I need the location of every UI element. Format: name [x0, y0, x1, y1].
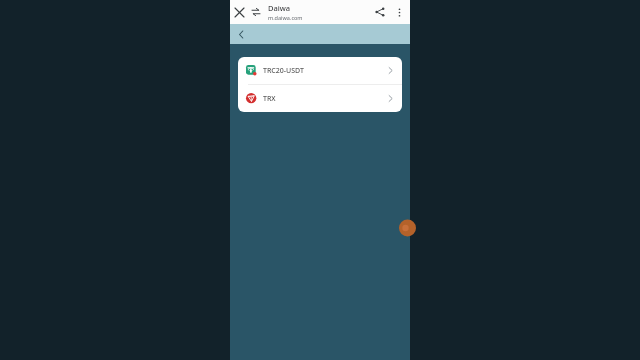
button[interactable]: Switch tabs	[248, 4, 264, 20]
button[interactable]: Daiwa	[268, 3, 370, 21]
button[interactable]: Back	[233, 26, 249, 42]
staticText: TRC20-USDT	[263, 66, 304, 76]
button[interactable]: Close	[230, 3, 248, 21]
button[interactable]: TRC20-USDT	[238, 57, 402, 84]
staticText: Daiwa	[268, 3, 291, 13]
button[interactable]: TRX	[238, 85, 402, 112]
button[interactable]: More options	[390, 3, 408, 21]
button[interactable]: Share	[370, 2, 390, 22]
staticText: TRX	[263, 94, 276, 104]
staticText: m.daiwa.com	[268, 14, 303, 21]
